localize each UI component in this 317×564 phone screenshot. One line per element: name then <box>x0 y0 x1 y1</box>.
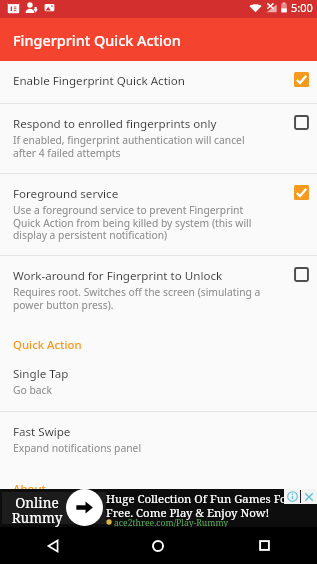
button[interactable]: Work-around for Fingerprint to Unlock <box>0 256 317 325</box>
button[interactable]: Online Rummy <box>0 489 317 527</box>
staticText: Single Tap <box>13 366 69 382</box>
button[interactable]: Ad information <box>284 489 300 504</box>
staticText: Quick Action <box>13 337 82 353</box>
staticText: Fast Swipe <box>13 424 71 440</box>
button[interactable]: Fast Swipe <box>0 412 317 469</box>
staticText: About <box>13 481 46 489</box>
staticText: Work-around for Fingerprint to Unlock <box>13 268 223 284</box>
button[interactable]: Back <box>0 527 105 564</box>
staticText: Huge Collection Of Fun Games For Free. C… <box>106 491 292 520</box>
staticText: Go back <box>13 383 52 397</box>
staticText: Foreground service <box>13 186 119 202</box>
staticText: Use a foreground service to prevent Fing… <box>13 203 270 242</box>
button[interactable]: Single Tap <box>0 354 317 411</box>
button[interactable]: Home <box>105 527 211 564</box>
button[interactable]: Recent apps <box>211 527 317 564</box>
staticText: Respond to enrolled fingerprints only <box>13 116 217 132</box>
staticText: Fingerprint Quick Action <box>13 31 181 51</box>
button[interactable]: Close ad <box>301 489 317 504</box>
staticText: If enabled, fingerprint authentication w… <box>13 133 270 160</box>
staticText: ace2three.com/Play-Rummy <box>114 517 229 527</box>
button[interactable]: Enable Fingerprint Quick Action <box>0 61 317 103</box>
staticText: Requires root. Switches off the screen (… <box>13 285 270 312</box>
staticText: Expand notifications panel <box>13 441 142 455</box>
staticText: Online Rummy <box>4 493 70 527</box>
button[interactable]: Foreground service <box>0 174 317 255</box>
staticText: 5:00 <box>291 0 313 15</box>
button[interactable]: Respond to enrolled fingerprints only <box>0 104 317 173</box>
staticText: Enable Fingerprint Quick Action <box>13 73 186 89</box>
